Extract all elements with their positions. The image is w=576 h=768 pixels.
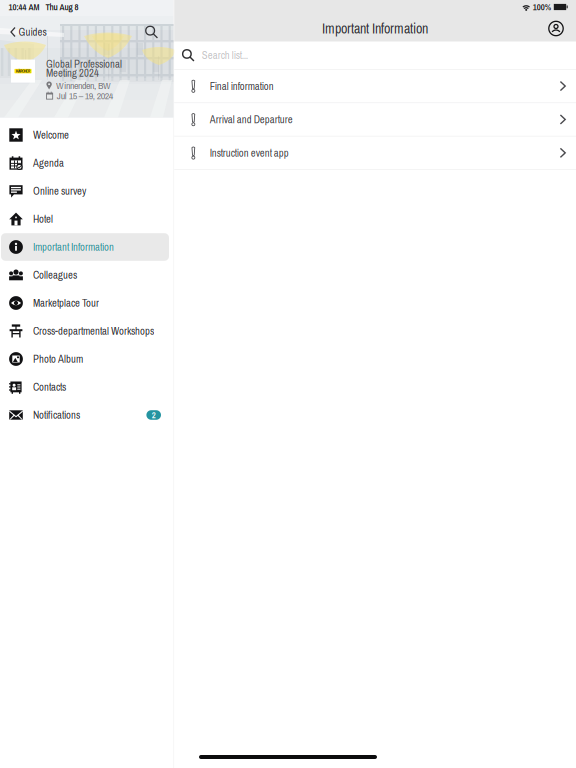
- button[interactable]: Instruction event app: [174, 136, 576, 170]
- staticText: Important Information: [33, 240, 114, 254]
- staticText: Photo Album: [33, 352, 83, 366]
- staticText: Winnenden, BW: [56, 79, 111, 92]
- button[interactable]: Arrival and Departure: [174, 103, 576, 136]
- button[interactable]: Final information: [174, 70, 576, 103]
- staticText: Final information: [210, 79, 274, 93]
- button[interactable]: Welcome: [0, 121, 173, 149]
- staticText: Search list...: [202, 48, 248, 62]
- button[interactable]: Search list...: [174, 41, 576, 69]
- button[interactable]: Notifications: [0, 401, 173, 429]
- staticText: Hotel: [33, 212, 53, 226]
- staticText: Thu Aug 8: [45, 1, 78, 13]
- button[interactable]: Marketplace Tour: [0, 289, 173, 317]
- button[interactable]: Cross-departmental Workshops: [0, 317, 173, 345]
- staticText: Jul 15 – 19, 2024: [57, 89, 113, 102]
- staticText: Cross-departmental Workshops: [33, 324, 154, 338]
- staticText: Global Professional: [46, 57, 122, 71]
- button[interactable]: Photo Album: [0, 345, 173, 373]
- button[interactable]: Hotel: [0, 205, 173, 233]
- staticText: Welcome: [33, 128, 69, 142]
- button[interactable]: Colleagues: [0, 261, 173, 289]
- staticText: 100%: [533, 1, 551, 13]
- staticText: Guides: [18, 25, 46, 39]
- staticText: 10:44 AM: [8, 1, 39, 13]
- button[interactable]: Account: [544, 16, 576, 40]
- button[interactable]: Agenda: [0, 149, 173, 177]
- staticText: Online survey: [33, 184, 86, 198]
- staticText: Colleagues: [33, 268, 77, 282]
- staticText: Notifications: [33, 408, 80, 422]
- button[interactable]: Search: [139, 20, 173, 44]
- staticText: Contacts: [33, 380, 66, 394]
- staticText: 2: [152, 409, 156, 421]
- staticText: Marketplace Tour: [33, 296, 99, 310]
- staticText: Important Information: [322, 19, 428, 38]
- staticText: Agenda: [33, 156, 64, 170]
- button[interactable]: Online survey: [0, 177, 173, 205]
- button[interactable]: Important Information: [0, 233, 173, 261]
- button[interactable]: Contacts: [0, 373, 173, 401]
- staticText: Arrival and Departure: [210, 112, 293, 127]
- button[interactable]: Guides: [0, 20, 52, 44]
- staticText: Instruction event app: [210, 146, 289, 160]
- staticText: Meeting 2024: [46, 66, 99, 80]
- staticText: KÄRCHER: [16, 69, 30, 74]
